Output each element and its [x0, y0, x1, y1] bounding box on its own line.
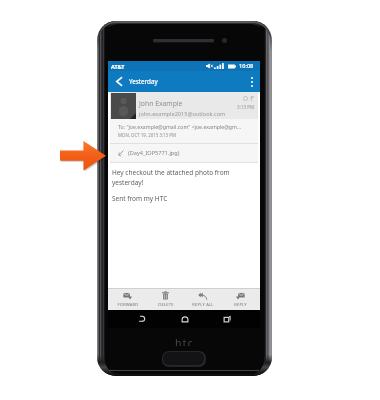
staticText: Hey checkout the attached photo from	[112, 168, 230, 177]
staticText: 10:08	[239, 62, 254, 70]
staticText: FORWARD	[117, 302, 139, 308]
button[interactable]: REPLY	[222, 288, 259, 310]
button[interactable]: DELETE	[147, 288, 184, 310]
staticText: John Example	[139, 99, 183, 108]
staticText: john.example2015@outlook.com	[139, 110, 226, 118]
staticText: REPLY ALL	[192, 302, 214, 308]
staticText: MON, OCT 19, 2015 3:13 PM	[118, 132, 176, 138]
button[interactable]: REPLY ALL	[184, 288, 221, 310]
staticText: yesterday!	[112, 178, 144, 187]
staticText: Yesterday	[129, 77, 158, 86]
button[interactable]: Home	[175, 310, 194, 327]
button[interactable]: Back	[132, 310, 151, 327]
staticText: REPLY	[234, 302, 247, 308]
staticText: 3:13 PM	[237, 104, 255, 110]
staticText: To: "joe.example@gmail.com" <joe.example…	[118, 123, 242, 130]
button[interactable]: Recent apps	[217, 310, 236, 327]
staticText: DELETE	[158, 302, 174, 308]
staticText: htc	[175, 336, 194, 346]
button[interactable]: FORWARD	[109, 288, 146, 310]
staticText: (Day4_IOP5771.jpg)	[128, 149, 180, 157]
button[interactable]: More options	[243, 71, 260, 92]
button[interactable]: Back	[108, 71, 129, 92]
staticText: AT&T	[111, 63, 125, 70]
button[interactable]: (Day4_IOP5771.jpg)	[118, 143, 258, 163]
staticText: Sent from my HTC	[112, 194, 168, 203]
